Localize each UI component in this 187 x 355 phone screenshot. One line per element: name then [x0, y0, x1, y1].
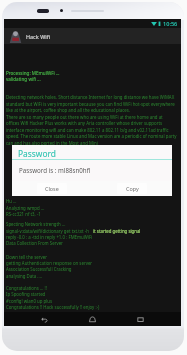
- staticText: RS-cc321 nf t3, -1: [6, 211, 41, 217]
- staticText: Hack Wifi: [26, 33, 51, 40]
- staticText: interface monitoring wifi and can make 8…: [6, 127, 169, 133]
- staticText: #config! wlan0 up plus: [6, 298, 53, 304]
- staticText: Down tell the server: [6, 254, 47, 260]
- staticText: There are so many people out there who a…: [6, 114, 163, 120]
- button[interactable]: Close: [12, 181, 92, 196]
- staticText: Analyzing wmpd ...: [6, 205, 45, 211]
- staticText: Close: [45, 185, 59, 192]
- staticText: can and has also ported in the Most and …: [6, 140, 98, 146]
- staticText: Password: [18, 148, 56, 159]
- staticText: validating wifi ...: [6, 76, 41, 82]
- staticText: Copy: [126, 185, 139, 192]
- staticText: Specting Network strength ...: [6, 221, 66, 227]
- staticText: Detecting network holes. Short distance …: [6, 94, 175, 100]
- staticText: it started getting signal: [93, 228, 141, 234]
- staticText: reply -0.0 : a -ttd in reply +1.0 : FMEm…: [6, 234, 93, 240]
- staticText: analysing Data ....: [6, 273, 42, 279]
- staticText: like at the airport, coffee shop and all…: [6, 107, 130, 113]
- staticText: offices Wifi Hacker Plus works with any …: [6, 120, 163, 126]
- staticText: Association Successfull Cracking: [6, 266, 72, 272]
- button[interactable]: Copy: [92, 181, 172, 196]
- staticText: Hu ...: [6, 198, 17, 204]
- staticText: 10:56: [163, 20, 178, 28]
- button[interactable]: Hack Wifi: [4, 28, 181, 44]
- staticText: Processing: MEmuWiFi ...: [6, 70, 60, 76]
- staticText: Data Collection From Server: [6, 240, 63, 246]
- button[interactable]: Back: [37, 312, 51, 326]
- staticText: standard but WiFi is very important beca…: [6, 101, 175, 107]
- button[interactable]: Recent apps: [133, 312, 147, 326]
- staticText: Password is : ml88sn0hfl: [19, 166, 91, 174]
- button[interactable]: Home: [85, 312, 99, 326]
- staticText: getting Authentication response on serve…: [6, 260, 93, 266]
- staticText: Congratulations !! Hack successfully !! …: [6, 304, 100, 310]
- staticText: signal-v:data/wifi/dictionary get txt.tx…: [6, 228, 89, 234]
- staticText: Ip Spoofing started: [6, 291, 46, 297]
- staticText: speed. The route more stable Linux and M…: [6, 133, 177, 139]
- staticText: Congratulations ... !!: [6, 285, 47, 291]
